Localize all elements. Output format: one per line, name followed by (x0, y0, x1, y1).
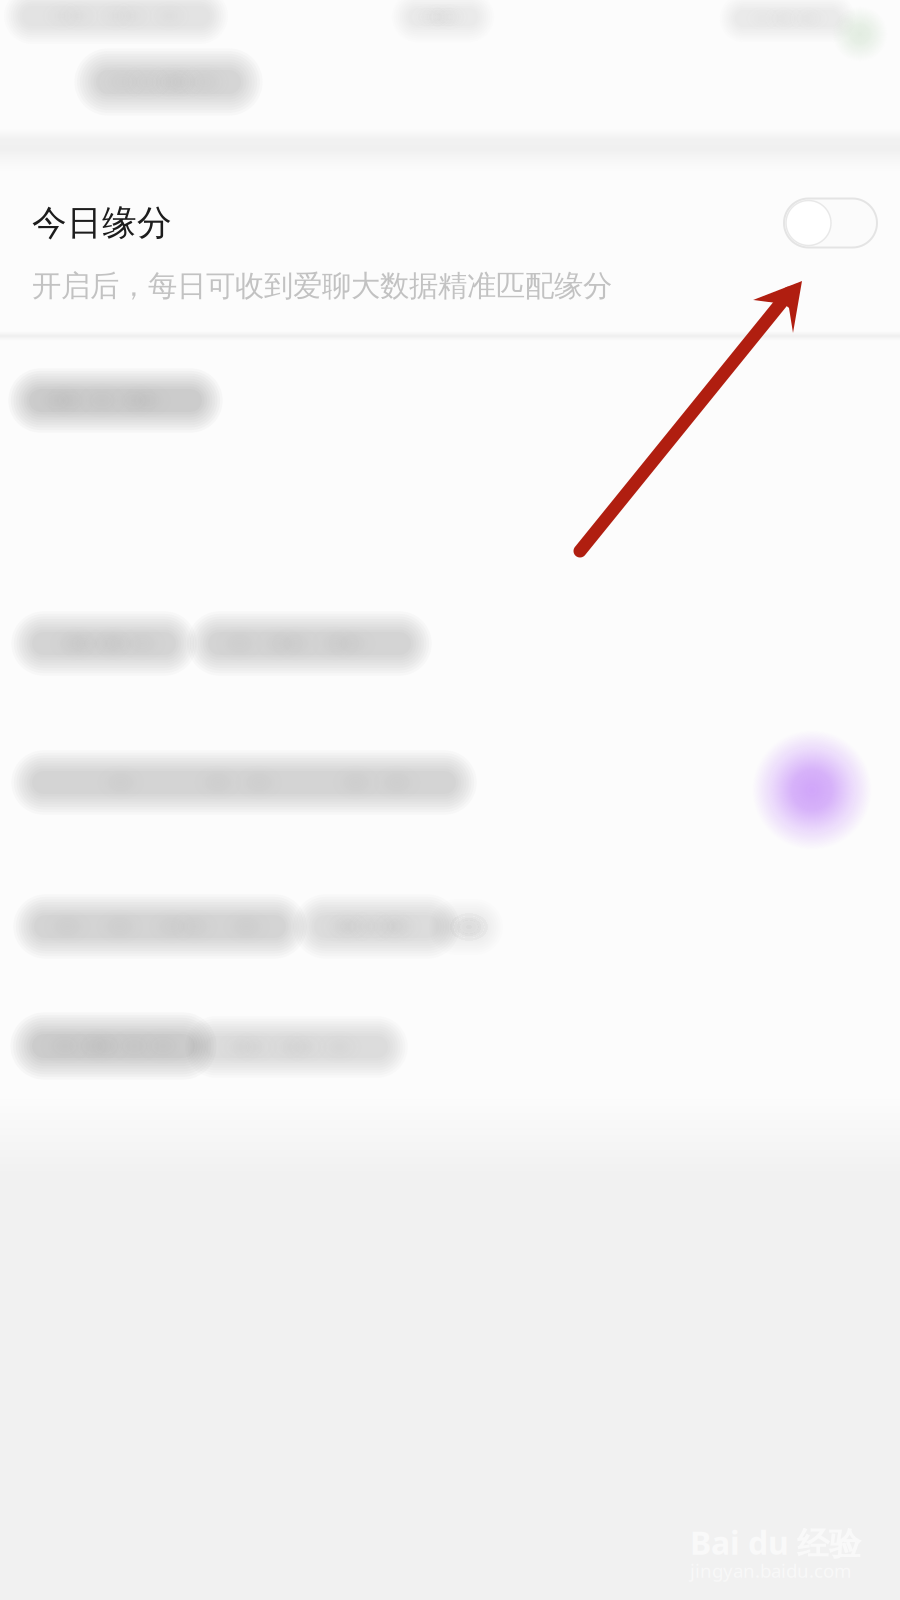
staticText: 今日缘分 (32, 202, 172, 244)
staticText: Bai du 经验 (690, 1521, 861, 1564)
button[interactable]: 今日缘分 (32, 195, 877, 251)
staticText: 开启后，每日可收到爱聊大数据精准匹配缘分 (32, 268, 612, 304)
